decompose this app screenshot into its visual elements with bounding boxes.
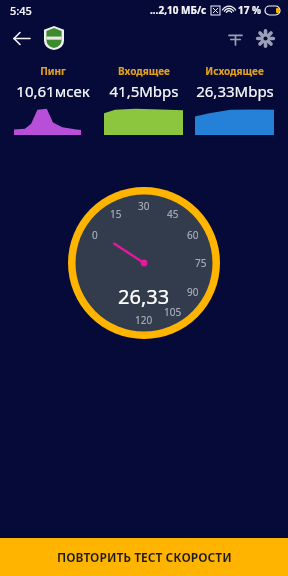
staticText: Исходящее [205,64,264,78]
staticText: 90 [187,285,199,299]
staticText: 17 % [238,3,262,17]
staticText: 0 [92,228,98,242]
staticText: 5:45 [10,3,32,18]
button[interactable]: Settings [250,23,280,53]
staticText: 75 [195,256,207,270]
staticText: 10,61мсек [16,81,90,101]
staticText: ПОВТОРИТЬ ТЕСТ СКОРОСТИ [57,549,232,565]
staticText: 26,33Mbps [196,81,274,101]
staticText: 41,5Mbps [109,81,179,101]
staticText: 105 [164,305,182,319]
button[interactable]: Wi-Fi [220,23,250,53]
staticText: 15 [110,207,122,221]
staticText: 45 [167,207,179,221]
button[interactable]: ПОВТОРИТЬ ТЕСТ СКОРОСТИ [0,538,288,576]
staticText: Входящее [118,64,170,78]
staticText: ...2,10 МБ/c [150,3,207,17]
staticText: 26,33 [118,283,170,310]
staticText: 60 [187,228,199,242]
staticText: 30 [138,199,150,213]
staticText: Пинг [40,64,66,78]
button[interactable]: Back [6,23,36,53]
staticText: 120 [135,313,153,327]
